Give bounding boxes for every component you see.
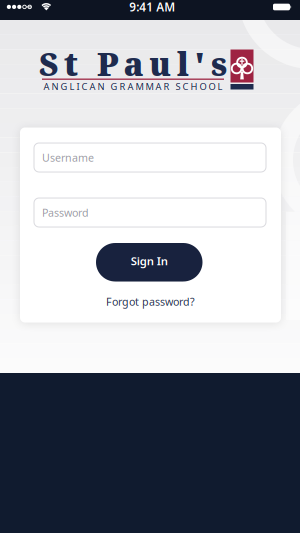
button[interactable]: Sign In [96, 243, 202, 281]
staticText: Password [42, 205, 89, 220]
staticText: Forgot password? [106, 294, 195, 309]
staticText: St Paul's [39, 42, 227, 85]
staticText: 9:41 AM [129, 0, 175, 15]
button[interactable]: Password [34, 198, 266, 227]
button[interactable]: Username [34, 143, 266, 172]
staticText: A N G L I C A N G R A M M A R S C H O O … [43, 80, 222, 93]
staticText: Username [42, 150, 94, 165]
staticText: Sign In [131, 253, 168, 268]
button[interactable]: Forgot password? [106, 294, 195, 309]
